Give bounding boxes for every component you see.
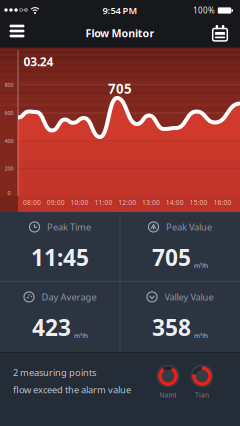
staticText: Nami (159, 391, 176, 399)
staticText: 11:45 (31, 242, 89, 272)
staticText: Valley Value (164, 291, 213, 303)
button[interactable]: Tian (190, 365, 213, 399)
staticText: 423 (32, 312, 71, 342)
staticText: 03.24 (23, 53, 54, 69)
staticText: 10:00 (71, 198, 89, 207)
staticText: m³/h (74, 331, 88, 340)
staticText: m³/h (194, 261, 208, 270)
staticText: 2 measuring points (13, 366, 96, 378)
staticText: 705 (152, 242, 191, 272)
staticText: 705 (108, 80, 132, 97)
staticText: 13:00 (142, 198, 160, 207)
staticText: m³/h (194, 331, 208, 340)
button[interactable]: Nami (156, 365, 179, 399)
staticText: flow exceed the alarm value (13, 383, 131, 396)
button[interactable]: Calendar (211, 24, 228, 41)
staticText: 09:00 (47, 198, 65, 207)
staticText: 358 (152, 312, 191, 342)
staticText: 08:00 (23, 198, 41, 207)
staticText: 100% (193, 5, 215, 16)
staticText: 600 (4, 109, 13, 117)
staticText: 400 (4, 137, 13, 145)
button[interactable]: Menu (5, 20, 29, 42)
staticText: Peak Time (47, 221, 91, 233)
staticText: 12:00 (118, 198, 136, 207)
staticText: 0 (7, 189, 10, 197)
staticText: 16:00 (213, 198, 231, 207)
staticText: 15:00 (190, 198, 208, 207)
staticText: Peak Value (166, 221, 212, 233)
staticText: 9:54 PM (102, 4, 137, 17)
staticText: 14:00 (166, 198, 184, 207)
staticText: 800 (4, 81, 13, 89)
staticText: Flow Monitor (86, 26, 154, 40)
staticText: 200 (4, 165, 13, 172)
staticText: Day Average (41, 291, 96, 303)
staticText: 11:00 (94, 198, 112, 207)
staticText: Tian (195, 391, 209, 399)
